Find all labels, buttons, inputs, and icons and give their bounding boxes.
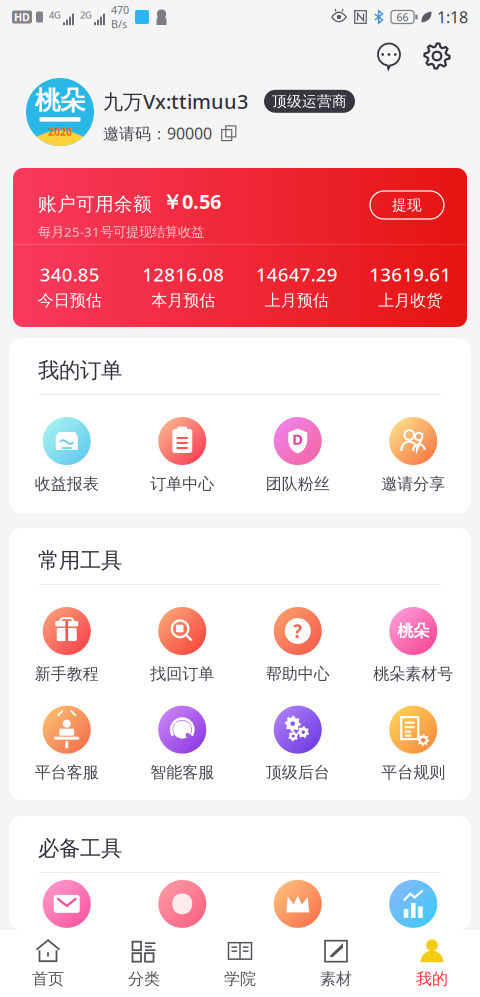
staticText: ? — [293, 619, 302, 643]
staticText: 帮助中心 — [266, 664, 330, 684]
staticText: 1:18 — [437, 6, 468, 28]
staticText: 上月预估 — [265, 291, 329, 310]
button[interactable] — [240, 880, 355, 958]
staticText: 470 B/s — [111, 3, 129, 31]
button[interactable]: 顶级后台 — [240, 706, 355, 782]
button[interactable]: 分类 — [96, 930, 192, 997]
staticText: 平台规则 — [381, 763, 445, 782]
staticText: 分类 — [128, 969, 160, 989]
button[interactable]: Messages — [375, 42, 403, 70]
button[interactable]: ? — [240, 607, 355, 684]
staticText: 账户可用余额 — [38, 193, 152, 216]
staticText: 素材 — [320, 969, 352, 989]
staticText: 我的订单 — [38, 357, 122, 384]
button[interactable]: 智能客服 — [124, 706, 240, 782]
button[interactable] — [9, 880, 124, 958]
staticText: 2G — [80, 9, 92, 21]
staticText: 新手教程 — [35, 664, 99, 684]
button[interactable]: 素材 — [288, 930, 384, 997]
staticText: 今日预估 — [38, 291, 102, 310]
staticText: 桃朵素材号 — [373, 664, 453, 684]
button[interactable]: 提现 — [370, 191, 444, 219]
staticText: 340.85 — [40, 262, 100, 287]
staticText: D — [292, 429, 303, 449]
button[interactable]: 收益报表 — [9, 417, 124, 494]
staticText: 九万Vx:ttimuu3 — [103, 88, 248, 115]
staticText: 12816.08 — [142, 262, 224, 287]
staticText: 2020 — [48, 125, 72, 139]
staticText: 顶级后台 — [266, 763, 330, 782]
button[interactable]: 新手教程 — [9, 607, 124, 684]
staticText: 订单中心 — [150, 474, 214, 494]
button[interactable]: 邀请分享 — [355, 417, 471, 494]
staticText: 平台客服 — [35, 763, 99, 782]
button[interactable]: 平台规则 — [355, 706, 471, 782]
staticText: 我的 — [416, 969, 448, 989]
button[interactable]: 我的 — [384, 930, 480, 997]
staticText: 常用工具 — [38, 547, 122, 574]
staticText: 4G — [49, 9, 61, 21]
staticText: 66 — [396, 10, 408, 24]
staticText: 必备工具 — [38, 835, 122, 862]
button[interactable]: 找回订单 — [124, 607, 240, 684]
staticText: 智能客服 — [150, 763, 214, 782]
staticText: 上月收货 — [378, 291, 442, 310]
staticText: 团队粉丝 — [266, 474, 330, 494]
button[interactable]: 首页 — [0, 930, 96, 997]
button[interactable]: 学院 — [192, 930, 288, 997]
staticText: 14647.29 — [256, 262, 338, 287]
staticText: 桃朵 — [35, 85, 85, 116]
staticText: 桃朵 — [397, 621, 429, 641]
staticText: 本月预估 — [151, 291, 215, 310]
button[interactable] — [124, 880, 240, 958]
staticText: 首页 — [32, 969, 64, 989]
staticText: 收益报表 — [35, 474, 99, 494]
button[interactable]: Copy invite code — [212, 125, 237, 141]
button[interactable]: 桃朵 — [355, 607, 471, 684]
staticText: 学院 — [224, 969, 256, 989]
staticText: 每月25-31号可提现结算收益 — [38, 223, 204, 240]
staticText: 顶级运营商 — [272, 92, 347, 110]
staticText: 提现 — [392, 196, 422, 214]
button[interactable] — [355, 880, 471, 958]
button[interactable]: 订单中心 — [124, 417, 240, 494]
staticText: 13619.61 — [369, 262, 451, 287]
staticText: 邀请分享 — [381, 474, 445, 494]
button[interactable]: D — [240, 417, 355, 494]
staticText: HD — [14, 10, 30, 24]
staticText: 邀请码：90000 — [103, 123, 212, 144]
staticText: 找回订单 — [150, 664, 214, 684]
button[interactable]: 平台客服 — [9, 706, 124, 782]
staticText: ￥0.56 — [162, 188, 221, 215]
button[interactable]: Settings — [423, 42, 451, 70]
